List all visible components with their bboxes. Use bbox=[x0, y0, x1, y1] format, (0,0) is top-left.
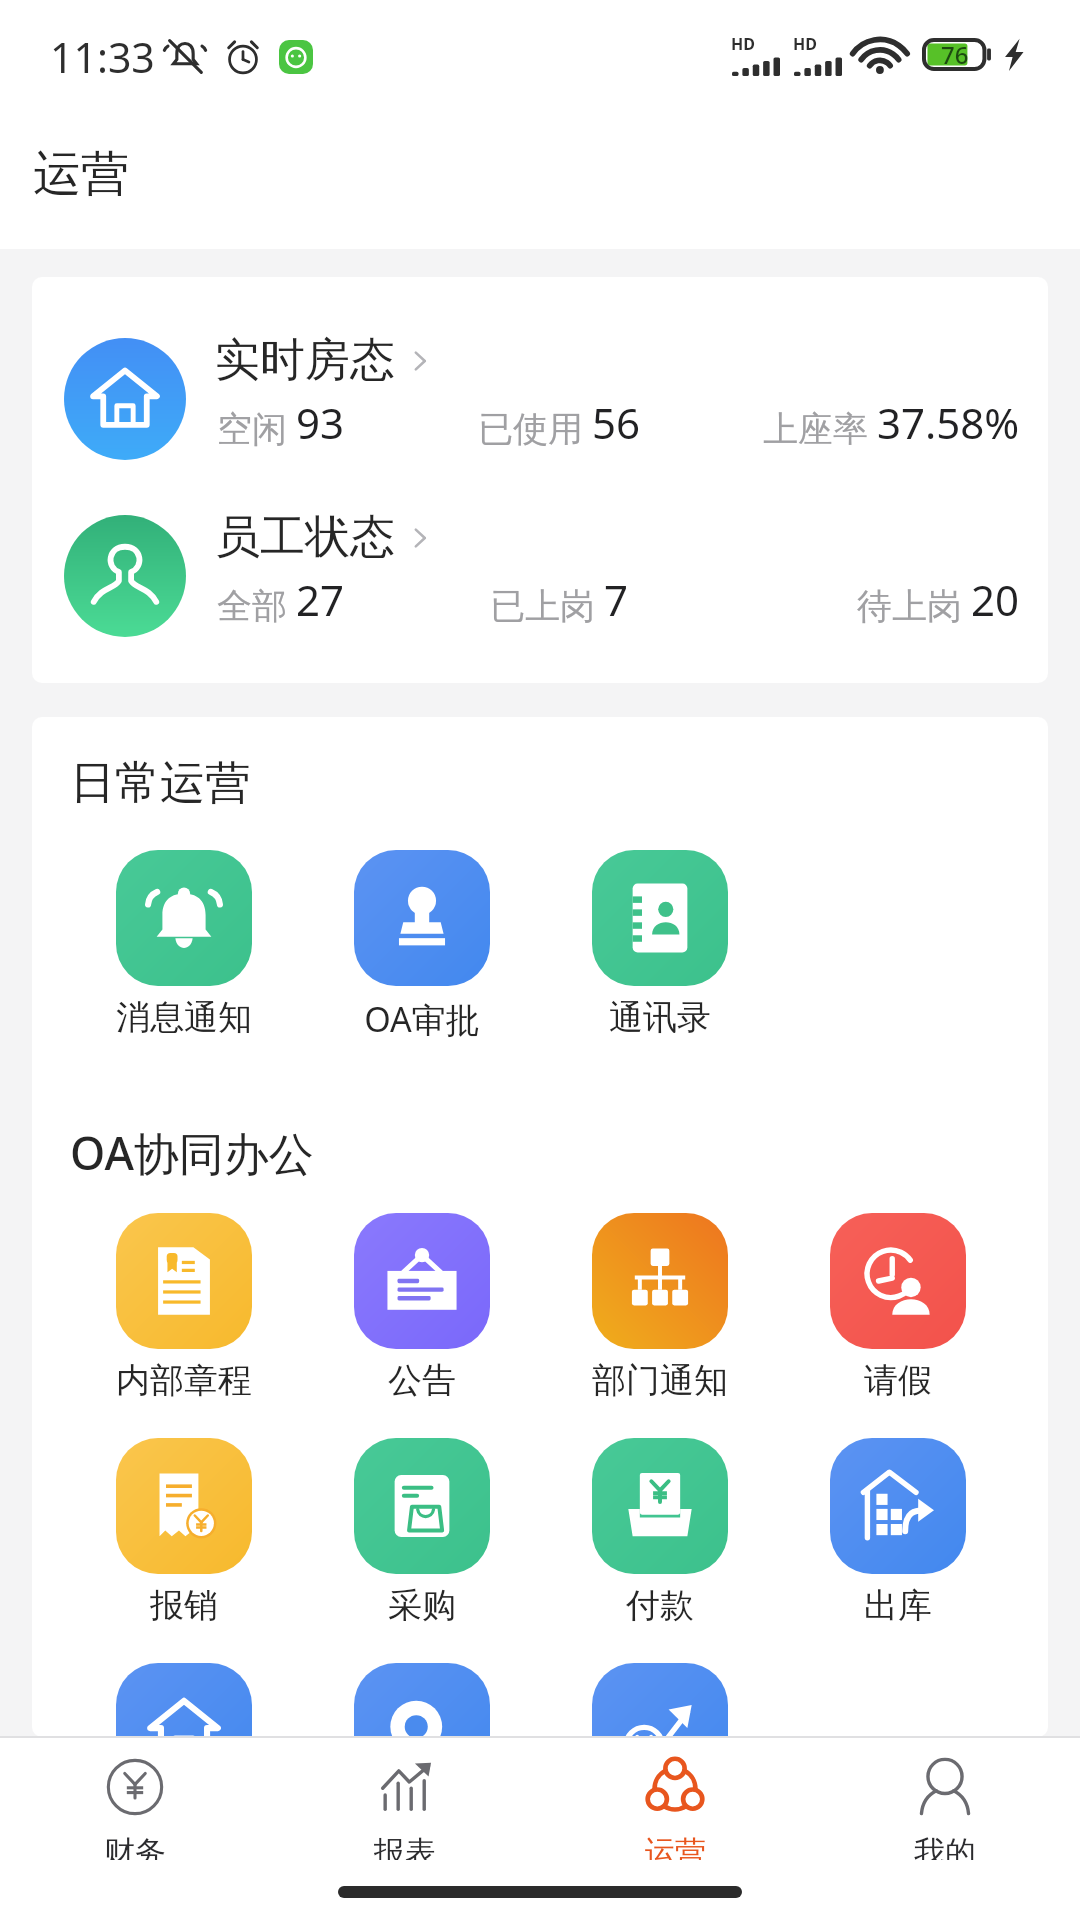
staticText: 我的 bbox=[914, 1833, 976, 1860]
button[interactable]: 报销 bbox=[96, 1438, 272, 1627]
button[interactable]: 内部章程 bbox=[96, 1213, 272, 1402]
button[interactable]: 出库 bbox=[810, 1438, 986, 1627]
staticText: 运营 bbox=[644, 1833, 706, 1860]
button[interactable]: 采购 bbox=[334, 1438, 510, 1627]
staticText: 空闲 bbox=[217, 407, 287, 451]
other: 报表 bbox=[374, 1756, 436, 1818]
staticText: 27 bbox=[296, 571, 345, 628]
staticText: 通讯录 bbox=[609, 996, 711, 1039]
staticText: 已上岗 bbox=[490, 584, 595, 628]
staticText: OA协同办公 bbox=[70, 1122, 314, 1183]
staticText: 上座率 bbox=[763, 407, 868, 451]
staticText: 日常运营 bbox=[70, 755, 250, 812]
staticText: OA审批 bbox=[364, 996, 480, 1042]
staticText: 7 bbox=[604, 571, 629, 628]
staticText: 付款 bbox=[626, 1584, 694, 1627]
staticText: HD bbox=[793, 33, 817, 55]
staticText: 20 bbox=[971, 571, 1020, 628]
other: 运营 bbox=[644, 1756, 706, 1818]
button[interactable] bbox=[572, 1663, 748, 1737]
staticText: 部门通知 bbox=[592, 1359, 728, 1402]
staticText: 采购 bbox=[388, 1584, 456, 1627]
staticText: 已使用 bbox=[478, 407, 583, 451]
staticText: 37.58% bbox=[877, 394, 1020, 451]
button[interactable]: 请假 bbox=[810, 1213, 986, 1402]
button[interactable]: 公告 bbox=[334, 1213, 510, 1402]
staticText: 员工状态 bbox=[215, 509, 395, 566]
staticText: HD bbox=[731, 33, 755, 55]
staticText: 全部 bbox=[217, 584, 287, 628]
staticText: 76 bbox=[941, 38, 969, 71]
staticText: 内部章程 bbox=[116, 1359, 252, 1402]
button[interactable]: 通讯录 bbox=[572, 850, 748, 1039]
other: 财务 bbox=[104, 1756, 166, 1818]
button[interactable]: 实时房态 bbox=[32, 332, 1048, 482]
button[interactable]: 员工状态 bbox=[32, 509, 1048, 659]
staticText: 56 bbox=[592, 394, 641, 451]
button[interactable]: 运营 bbox=[540, 1738, 810, 1860]
other: 我的 bbox=[914, 1756, 976, 1818]
button[interactable]: 消息通知 bbox=[96, 850, 272, 1039]
button[interactable]: 我的 bbox=[810, 1738, 1080, 1860]
staticText: 报表 bbox=[374, 1833, 436, 1860]
staticText: 报销 bbox=[150, 1584, 218, 1627]
staticText: 待上岗 bbox=[857, 584, 962, 628]
staticText: 运营 bbox=[33, 144, 129, 204]
staticText: 财务 bbox=[104, 1833, 166, 1860]
button[interactable] bbox=[96, 1663, 272, 1737]
staticText: 93 bbox=[296, 394, 345, 451]
staticText: 请假 bbox=[864, 1359, 932, 1402]
staticText: 实时房态 bbox=[215, 332, 395, 389]
staticText: 公告 bbox=[388, 1359, 456, 1402]
staticText: 11:33 bbox=[50, 29, 155, 85]
staticText: 消息通知 bbox=[116, 996, 252, 1039]
button[interactable]: OA审批 bbox=[334, 850, 510, 1042]
button[interactable] bbox=[334, 1663, 510, 1737]
button[interactable]: 财务 bbox=[0, 1738, 270, 1860]
button[interactable]: 报表 bbox=[270, 1738, 540, 1860]
staticText: 出库 bbox=[864, 1584, 932, 1627]
button[interactable]: 部门通知 bbox=[572, 1213, 748, 1402]
button[interactable]: 付款 bbox=[572, 1438, 748, 1627]
